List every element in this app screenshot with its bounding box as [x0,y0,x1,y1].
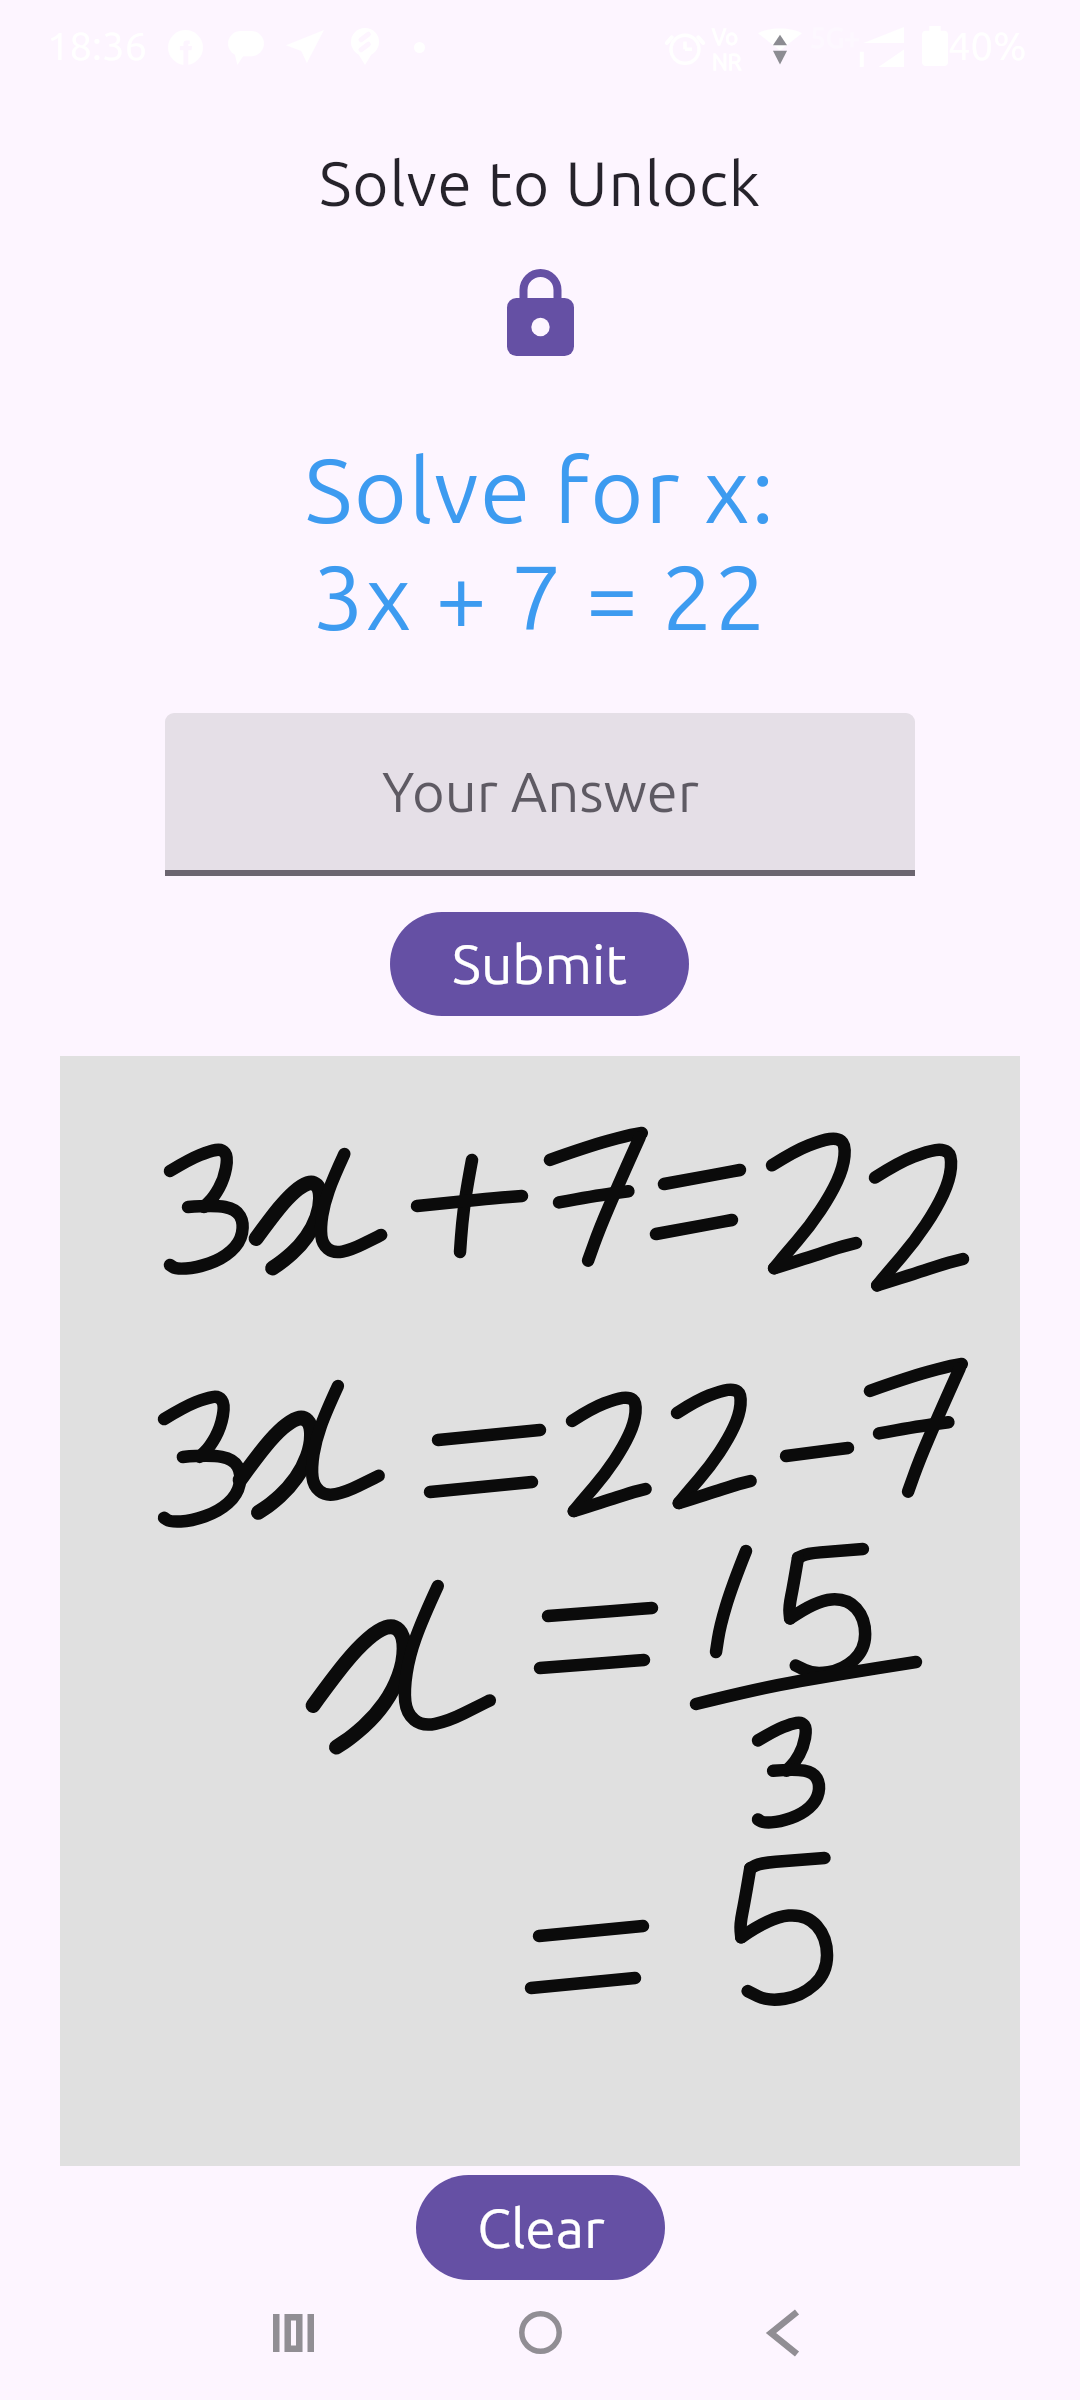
staticText: Your Answer [382,760,699,823]
button[interactable]: Your Answer [165,713,915,870]
button[interactable]: Back [704,2280,864,2385]
button[interactable]: Recent apps [213,2280,373,2385]
button[interactable]: Home [460,2280,620,2385]
staticText: Solve for x: 3x + 7 = 22 [0,438,1080,647]
staticText: Submit [452,933,627,995]
staticText: Clear [477,2197,605,2259]
staticText: Solve to Unlock [0,148,1080,218]
button[interactable]: Submit [390,912,689,1016]
staticText: NR [712,49,742,74]
staticText: 18:36 [47,23,148,68]
staticText: 40% [948,23,1027,68]
button[interactable]: Clear [416,2175,665,2280]
staticText: Vo [712,24,739,49]
